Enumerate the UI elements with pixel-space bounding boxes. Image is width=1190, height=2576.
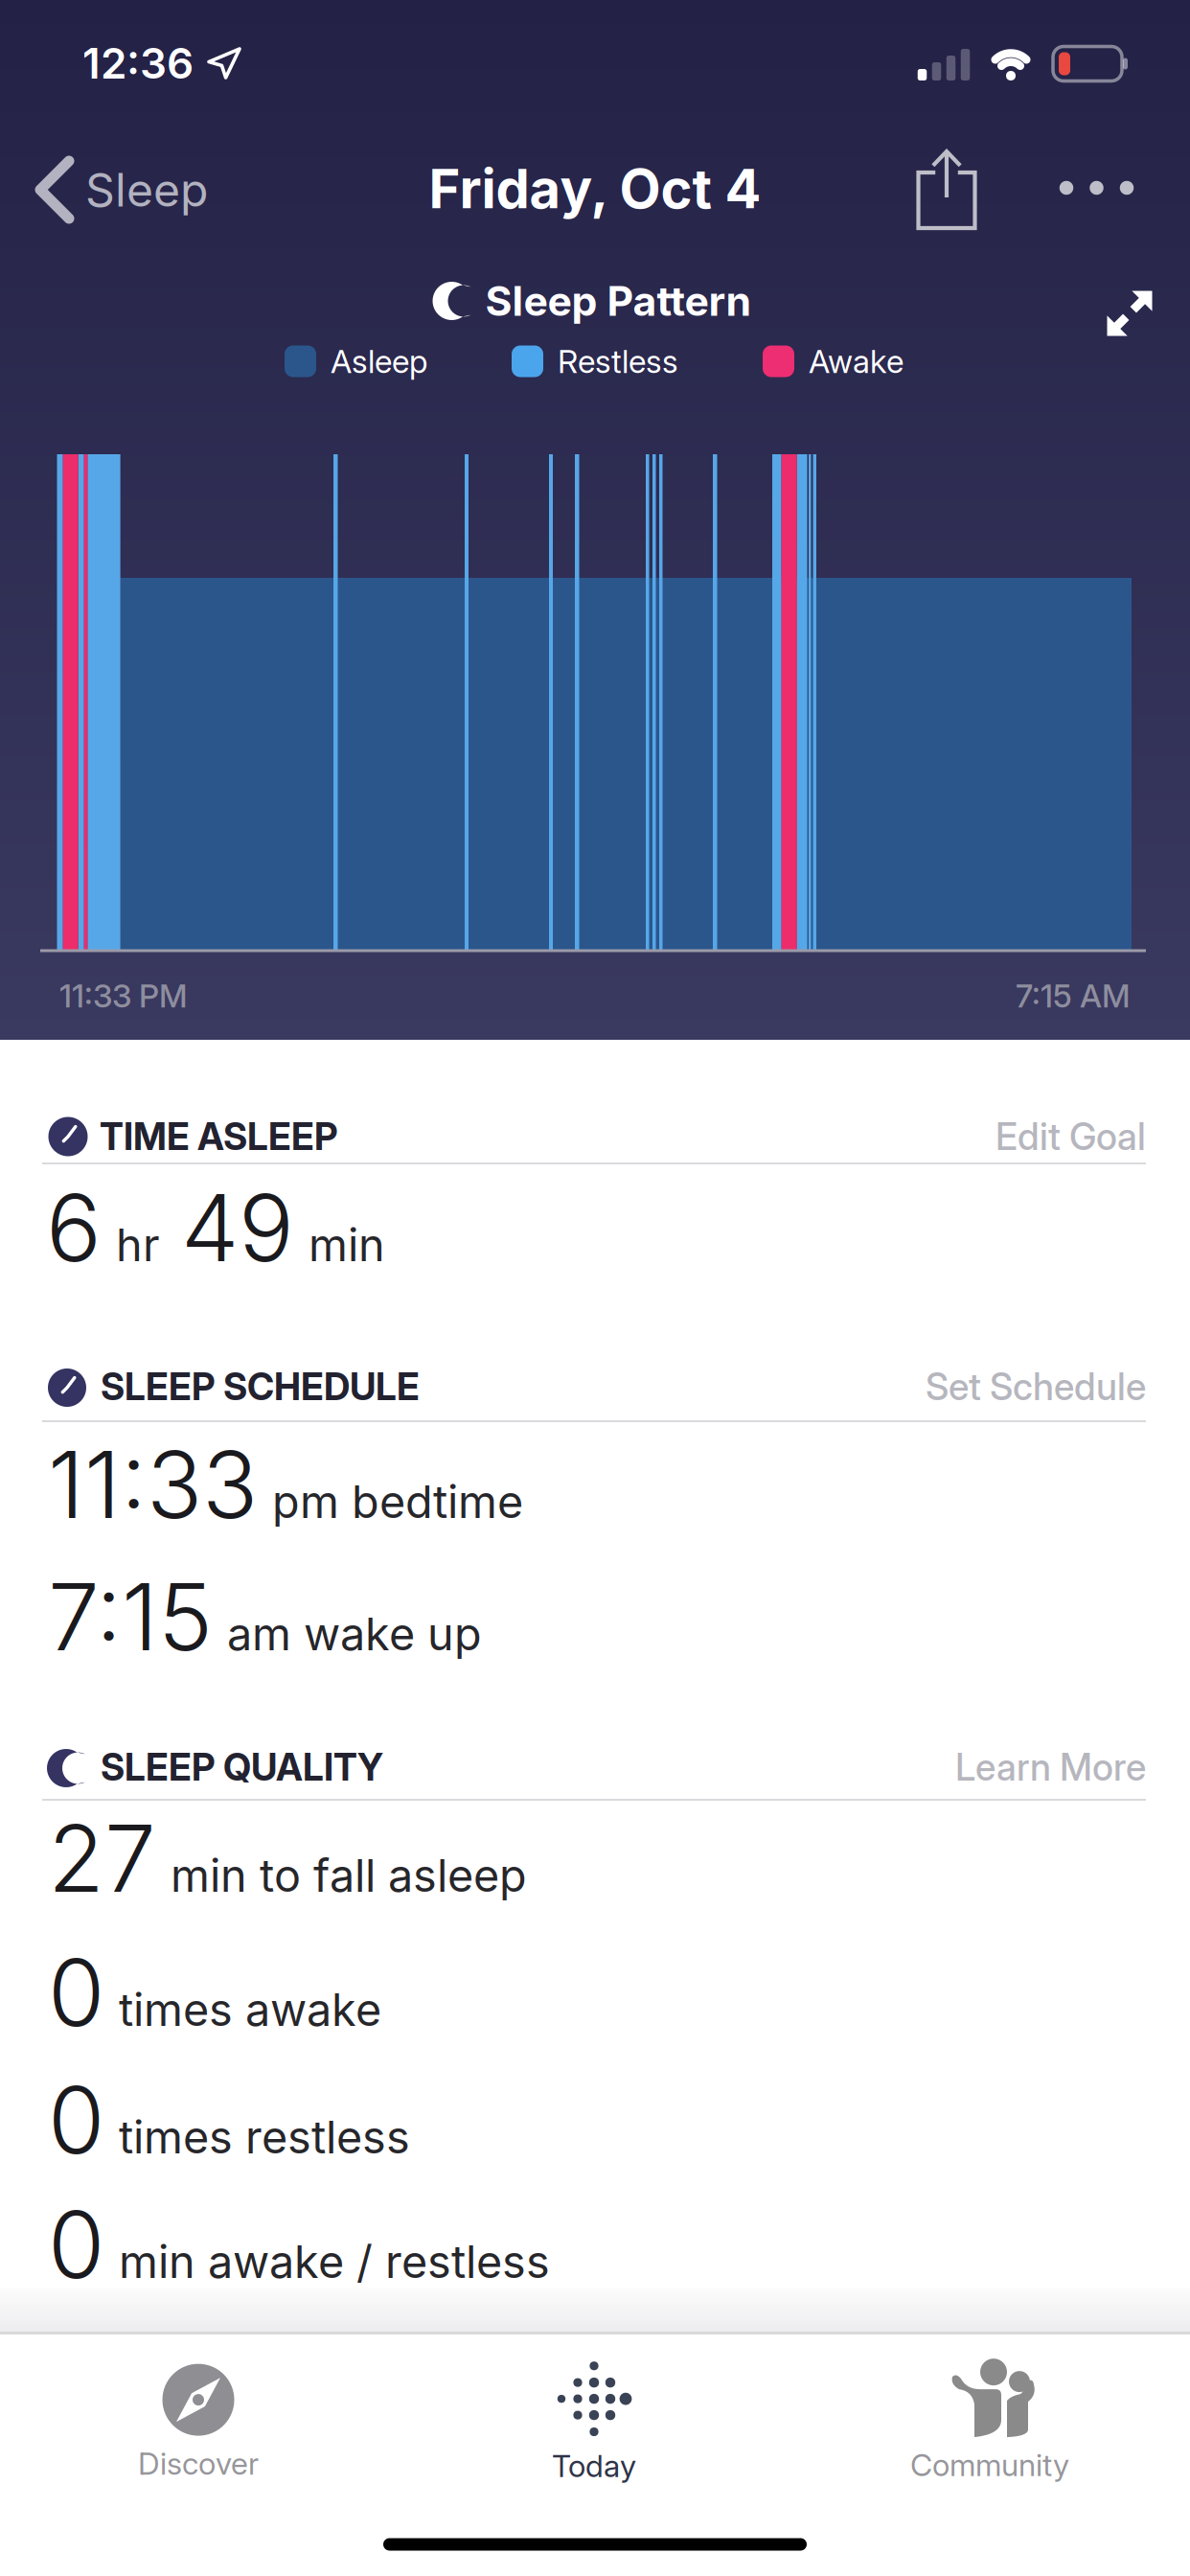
staticText: 11:33 [48, 1430, 258, 1539]
staticText: Set Schedule [926, 1365, 1146, 1409]
staticText: Asleep [331, 342, 427, 380]
staticText: 7:15 [48, 1562, 213, 1671]
staticText: 0 [48, 2066, 104, 2174]
button[interactable] [1059, 159, 1134, 217]
button[interactable]: Today [412, 2346, 776, 2499]
staticText: times restless [119, 2111, 410, 2163]
staticText: Sleep [85, 163, 208, 217]
staticText: Sleep Pattern [485, 277, 752, 325]
staticText: 11:33 PM [59, 977, 188, 1014]
button[interactable]: Edit Goal [0, 0, 1190, 2576]
button[interactable] [918, 151, 975, 228]
staticText: Edit Goal [995, 1115, 1146, 1158]
button[interactable]: Sleep [40, 132, 328, 247]
button[interactable] [1107, 291, 1152, 336]
staticText: 49 [181, 1173, 294, 1282]
staticText: 6 [46, 1173, 102, 1282]
staticText: min [309, 1218, 385, 1271]
button[interactable]: Discover [16, 2346, 380, 2499]
staticText: am wake up [227, 1608, 482, 1660]
staticText: Learn More [955, 1745, 1146, 1789]
button[interactable]: Set Schedule [0, 0, 1190, 2576]
staticText: 0 [48, 1938, 104, 2047]
staticText: 27 [48, 1804, 156, 1913]
staticText: Today [552, 2448, 636, 2484]
staticText: Community [910, 2447, 1069, 2483]
staticText: Awake [809, 342, 904, 380]
staticText: min to fall asleep [171, 1849, 527, 1902]
staticText: min awake / restless [119, 2235, 550, 2288]
staticText: TIME ASLEEP [100, 1115, 338, 1158]
staticText: hr [116, 1218, 160, 1271]
staticText: times awake [119, 1983, 381, 2036]
staticText: pm bedtime [272, 1475, 523, 1528]
staticText: 12:36 [82, 38, 194, 88]
staticText: Friday, Oct 4 [429, 157, 761, 221]
button[interactable]: Community [808, 2344, 1172, 2497]
staticText: SLEEP QUALITY [101, 1745, 383, 1789]
staticText: 0 [48, 2190, 104, 2299]
button[interactable]: Learn More [0, 0, 1190, 2576]
staticText: 7:15 AM [1016, 977, 1131, 1014]
staticText: Discover [138, 2445, 259, 2482]
staticText: Restless [558, 342, 678, 380]
staticText: SLEEP SCHEDULE [101, 1365, 420, 1409]
